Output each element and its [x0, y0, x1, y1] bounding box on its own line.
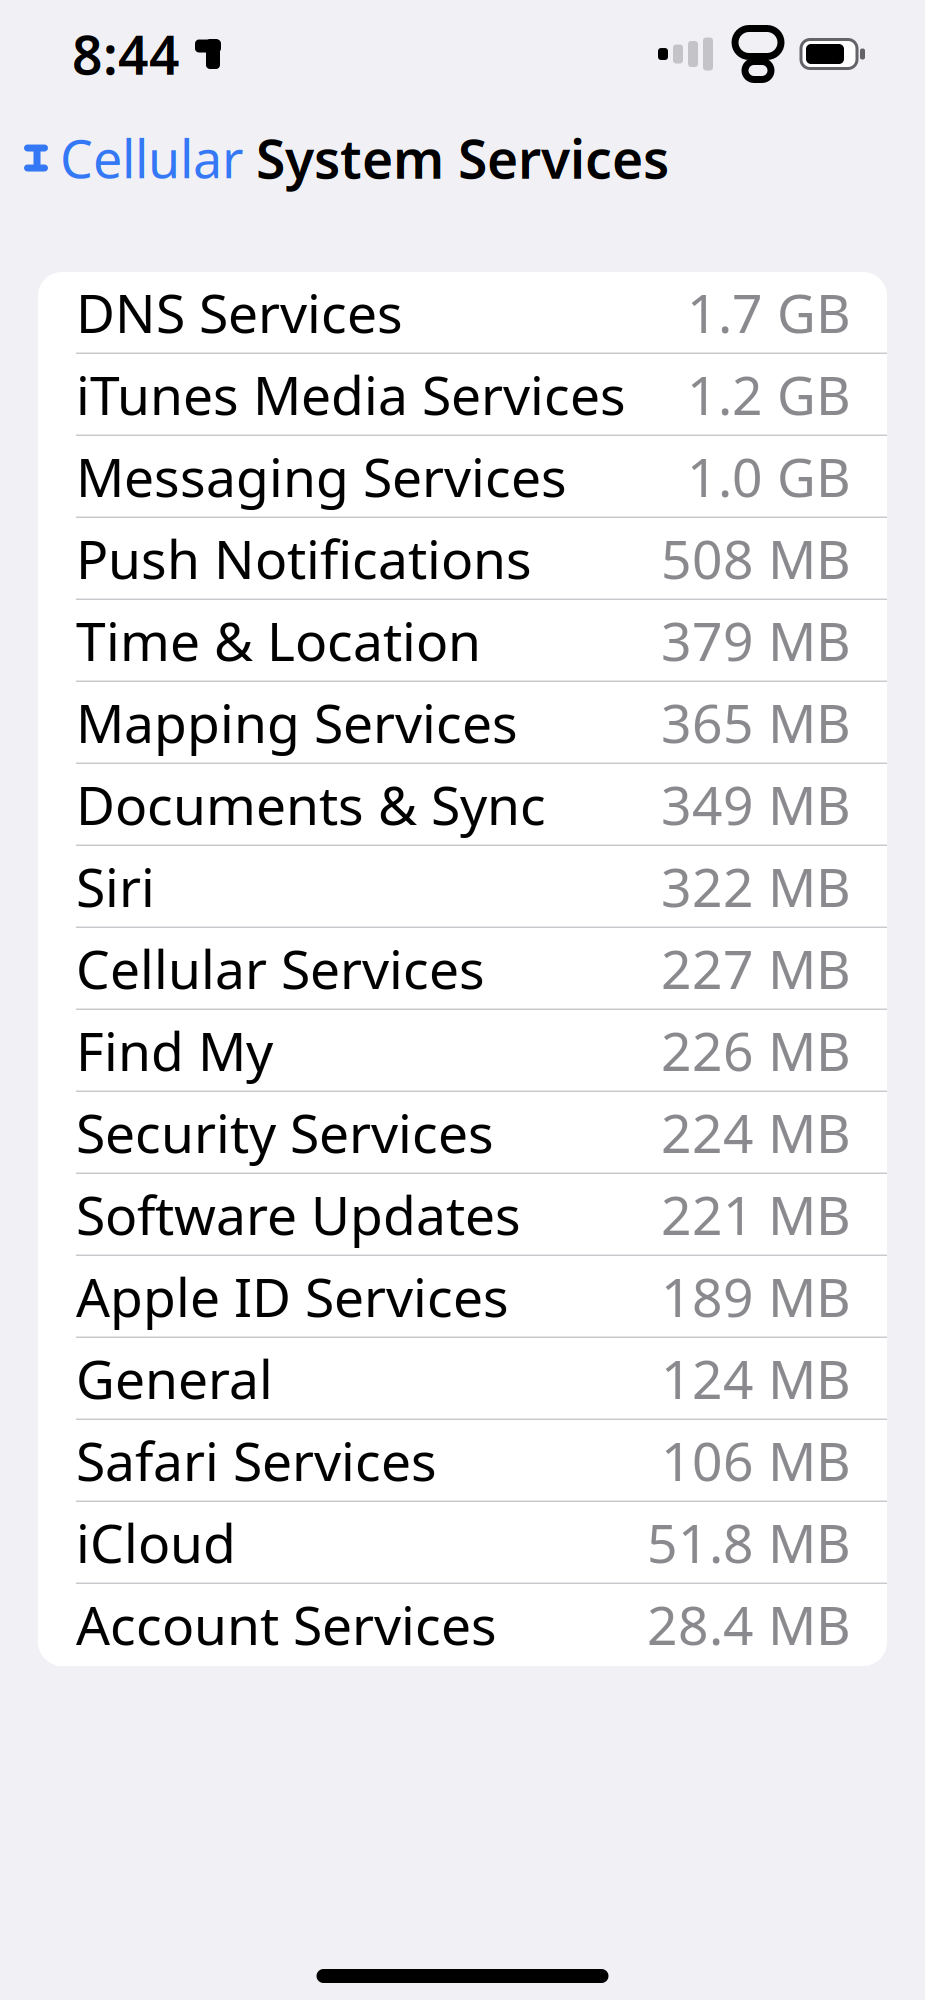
staticText: 349 MB: [661, 769, 851, 840]
staticText: Account Services: [76, 1589, 497, 1660]
staticText: iCloud: [76, 1507, 236, 1578]
button[interactable]: iTunes Media Services: [38, 354, 887, 436]
button[interactable]: Safari Services: [38, 1420, 887, 1502]
staticText: Cellular: [60, 123, 243, 193]
button[interactable]: Find My: [38, 1010, 887, 1092]
staticText: 28.4 MB: [647, 1589, 851, 1660]
button[interactable]: Messaging Services: [38, 436, 887, 518]
staticText: iTunes Media Services: [76, 359, 626, 430]
staticText: 226 MB: [661, 1015, 851, 1086]
button[interactable]: Software Updates: [38, 1174, 887, 1256]
staticText: 8:44: [72, 19, 180, 89]
staticText: 1.7 GB: [687, 277, 851, 348]
button[interactable]: DNS Services: [38, 272, 887, 354]
staticText: 322 MB: [661, 851, 851, 922]
staticText: DNS Services: [76, 277, 403, 348]
staticText: 106 MB: [661, 1425, 851, 1496]
button[interactable]: General: [38, 1338, 887, 1420]
staticText: Find My: [76, 1015, 273, 1086]
staticText: Mapping Services: [76, 687, 518, 758]
staticText: System Services: [256, 123, 669, 193]
staticText: 124 MB: [661, 1343, 851, 1414]
button[interactable]: Cellular: [0, 111, 259, 205]
staticText: Apple ID Services: [76, 1261, 509, 1332]
staticText: 508 MB: [661, 523, 851, 594]
staticText: Cellular Services: [76, 933, 485, 1004]
button[interactable]: Documents & Sync: [38, 764, 887, 846]
staticText: Push Notifications: [76, 523, 532, 594]
staticText: 189 MB: [661, 1261, 851, 1332]
staticText: Messaging Services: [76, 441, 567, 512]
staticText: 51.8 MB: [647, 1507, 851, 1578]
button[interactable]: Account Services: [38, 1584, 887, 1666]
staticText: Safari Services: [76, 1425, 437, 1496]
staticText: 227 MB: [661, 933, 851, 1004]
staticText: 224 MB: [661, 1097, 851, 1168]
staticText: Security Services: [76, 1097, 494, 1168]
button[interactable]: Cellular Services: [38, 928, 887, 1010]
staticText: Documents & Sync: [76, 769, 546, 840]
button[interactable]: Push Notifications: [38, 518, 887, 600]
staticText: 1.2 GB: [687, 359, 851, 430]
button[interactable]: iCloud: [38, 1502, 887, 1584]
staticText: 221 MB: [661, 1179, 851, 1250]
button[interactable]: Siri: [38, 846, 887, 928]
staticText: 1.0 GB: [687, 441, 851, 512]
button[interactable]: Time & Location: [38, 600, 887, 682]
staticText: 365 MB: [661, 687, 851, 758]
staticText: 379 MB: [661, 605, 851, 676]
button[interactable]: Apple ID Services: [38, 1256, 887, 1338]
staticText: Software Updates: [76, 1179, 521, 1250]
button[interactable]: Mapping Services: [38, 682, 887, 764]
staticText: Siri: [76, 851, 155, 922]
staticText: Time & Location: [76, 605, 481, 676]
staticText: General: [76, 1343, 273, 1414]
button[interactable]: Security Services: [38, 1092, 887, 1174]
